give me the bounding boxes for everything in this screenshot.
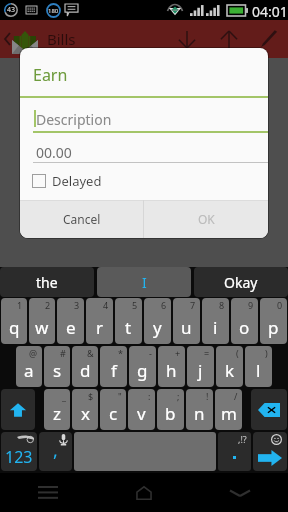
staticText: w <box>35 316 49 339</box>
staticText: $ <box>88 390 94 402</box>
button[interactable]: Backspace <box>251 389 287 430</box>
staticText: ,!? <box>238 433 247 445</box>
button[interactable]: Export <box>208 20 250 58</box>
button[interactable]: ; <box>157 389 184 430</box>
button[interactable]: 4 <box>86 298 113 344</box>
staticText: , <box>53 438 58 463</box>
button[interactable]: Shift <box>1 389 35 430</box>
staticText: 7 <box>190 299 196 311</box>
staticText: Bills <box>47 29 76 49</box>
staticText: * <box>118 347 123 359</box>
button[interactable]: 5 <box>115 298 142 344</box>
staticText: t <box>125 316 132 339</box>
button[interactable]: Delayed <box>32 171 102 191</box>
button[interactable]: ,!? <box>218 432 251 471</box>
staticText: j <box>198 359 203 382</box>
button[interactable]: _ <box>44 389 70 430</box>
staticText: Description <box>36 110 112 129</box>
staticText: ( <box>236 347 239 359</box>
button[interactable]: 8 <box>202 298 229 344</box>
button[interactable]: Symbols <box>1 432 37 471</box>
staticText: k <box>225 359 235 382</box>
staticText: h <box>166 359 177 382</box>
button[interactable]: 2 <box>29 298 55 344</box>
staticText: Delayed <box>52 172 102 190</box>
staticText: l <box>256 359 261 382</box>
staticText: 123 <box>5 446 33 468</box>
staticText: m <box>221 402 237 425</box>
button[interactable]: Home <box>96 473 192 512</box>
staticText: o <box>239 316 250 339</box>
button[interactable]: # <box>44 346 70 387</box>
button[interactable]: = <box>187 346 214 387</box>
staticText: d <box>80 359 91 382</box>
staticText: OK <box>198 211 215 227</box>
button[interactable]: ! <box>186 389 213 430</box>
button[interactable]: - <box>129 346 156 387</box>
button[interactable]: / <box>215 389 242 430</box>
button[interactable]: 9 <box>231 298 258 344</box>
staticText: i <box>213 316 218 339</box>
button[interactable]: Enter <box>253 432 287 471</box>
button[interactable]: 6 <box>144 298 171 344</box>
staticText: " <box>118 390 122 402</box>
button[interactable]: + <box>158 346 185 387</box>
staticText: n <box>194 402 205 425</box>
staticText: Cancel <box>63 211 101 227</box>
staticText: _ <box>62 390 66 402</box>
staticText: 6 <box>161 299 167 311</box>
button[interactable]: Navigate up <box>0 20 44 58</box>
staticText: v <box>137 402 146 425</box>
button[interactable]: @ <box>16 346 42 387</box>
button[interactable]: OK <box>144 200 268 238</box>
button[interactable]: " <box>100 389 126 430</box>
button[interactable]: I <box>97 267 191 297</box>
button[interactable]: , <box>39 432 72 471</box>
button[interactable]: ) <box>245 346 272 387</box>
staticText: Okay <box>224 273 258 292</box>
staticText: g <box>137 359 148 382</box>
button[interactable]: the <box>0 267 94 297</box>
staticText: a <box>24 359 34 382</box>
button[interactable]: Edit <box>250 20 288 58</box>
button[interactable]: * <box>100 346 127 387</box>
button[interactable]: Hide keyboard <box>192 473 288 512</box>
staticText: - <box>149 347 152 359</box>
staticText: s <box>53 359 62 382</box>
staticText: 180 <box>48 7 59 15</box>
button[interactable]: Import <box>166 20 208 58</box>
staticText: 00.00 <box>36 143 72 162</box>
button[interactable]: $ <box>72 389 98 430</box>
staticText: Earn <box>33 64 68 86</box>
button[interactable]: 7 <box>173 298 200 344</box>
button[interactable]: 3 <box>57 298 84 344</box>
staticText: ! <box>206 390 209 402</box>
staticText: 3 <box>74 299 80 311</box>
button[interactable]: Okay <box>194 267 288 297</box>
button[interactable]: 0 <box>260 298 287 344</box>
staticText: # <box>60 347 66 359</box>
staticText: : <box>148 390 151 402</box>
staticText: 43 <box>7 5 16 15</box>
staticText: q <box>9 316 20 339</box>
button[interactable]: : <box>128 389 155 430</box>
staticText: I <box>142 273 147 292</box>
staticText: = <box>204 347 210 359</box>
button[interactable]: & <box>72 346 98 387</box>
button[interactable]: Cancel <box>20 200 143 238</box>
button[interactable]: Menu <box>0 473 96 512</box>
staticText: ; <box>177 390 180 402</box>
button[interactable]: ( <box>216 346 243 387</box>
staticText: 8 <box>219 299 225 311</box>
staticText: z <box>53 402 61 425</box>
button[interactable]: 1 <box>1 298 27 344</box>
staticText: f <box>111 359 117 382</box>
staticText: 4 <box>103 299 109 311</box>
staticText: y <box>153 316 162 339</box>
staticText: x <box>81 402 90 425</box>
staticText: + <box>175 347 181 359</box>
staticText: & <box>87 347 94 359</box>
staticText: / <box>234 390 238 402</box>
staticText: c <box>109 402 118 425</box>
